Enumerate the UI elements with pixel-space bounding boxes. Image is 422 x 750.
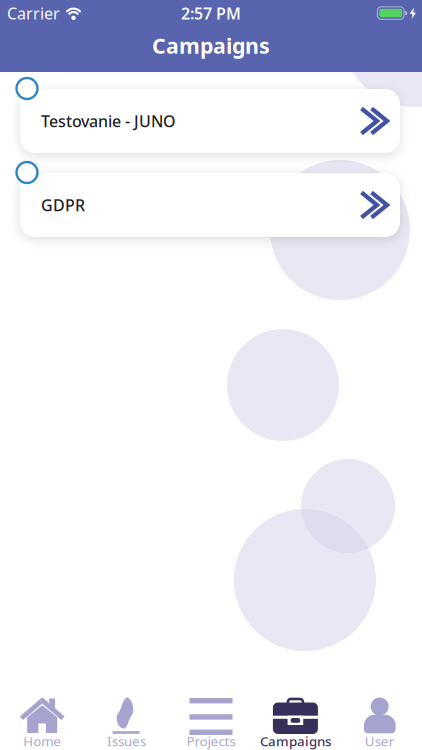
staticText: Issues [107,732,146,750]
staticText: Projects [186,732,235,750]
staticText: 2:57 PM [181,3,241,24]
button[interactable]: Issues [84,696,169,746]
button[interactable]: User [338,696,422,746]
button[interactable]: GDPR [20,173,400,237]
button[interactable]: Home [0,696,84,746]
staticText: Campaigns [152,31,270,60]
staticText: GDPR [41,194,85,216]
button[interactable]: Campaigns [253,696,338,746]
button[interactable]: Testovanie - JUNO [20,89,400,153]
staticText: Carrier [7,3,60,24]
staticText: User [365,732,395,750]
button[interactable]: Projects [169,696,253,746]
staticText: Home [23,732,61,750]
staticText: Campaigns [260,732,331,750]
staticText: Testovanie - JUNO [41,110,176,132]
